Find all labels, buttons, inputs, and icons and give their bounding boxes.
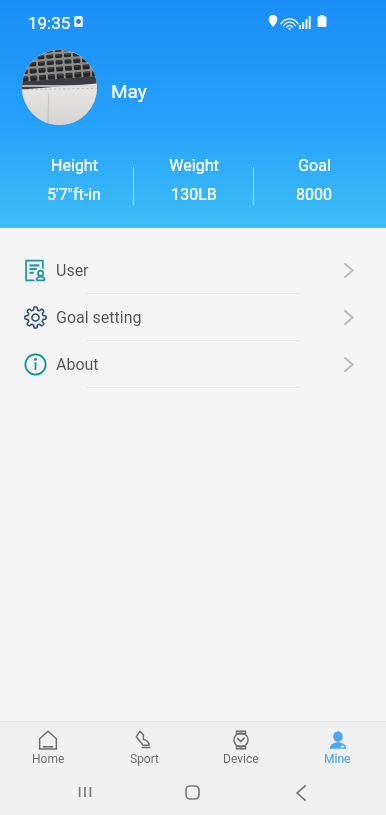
staticText: 8000 — [296, 185, 332, 204]
button[interactable]: Profile photo — [22, 50, 97, 125]
button[interactable]: Height — [14, 156, 134, 204]
staticText: Home — [32, 752, 65, 766]
button[interactable]: User — [0, 247, 386, 294]
staticText: Mine — [324, 752, 351, 766]
button[interactable]: Mine — [289, 722, 386, 770]
button[interactable]: Back — [293, 784, 313, 802]
button[interactable]: About — [0, 341, 386, 388]
staticText: Weight — [169, 156, 219, 175]
staticText: Goal setting — [56, 308, 142, 327]
staticText: Height — [51, 156, 98, 175]
button[interactable]: Weight — [134, 156, 254, 204]
button[interactable]: Home — [183, 785, 203, 801]
staticText: User — [56, 261, 89, 280]
staticText: Goal — [298, 156, 331, 175]
staticText: 5'7"ft-in — [47, 185, 101, 204]
other: Goal setting — [340, 309, 357, 326]
button[interactable]: Device — [192, 722, 289, 770]
button[interactable]: Home — [0, 722, 96, 770]
staticText: Device — [223, 752, 259, 766]
other: User — [340, 262, 357, 279]
staticText: Sport — [130, 752, 159, 766]
button[interactable]: Sport — [96, 722, 192, 770]
staticText: About — [56, 355, 99, 374]
staticText: 19:35 — [28, 13, 71, 33]
staticText: 130LB — [171, 185, 217, 204]
button[interactable]: Goal — [254, 156, 374, 204]
staticText: May — [111, 80, 147, 102]
other: About — [340, 356, 357, 373]
button[interactable]: Goal setting — [0, 294, 386, 341]
button[interactable]: Recent apps — [75, 785, 95, 801]
